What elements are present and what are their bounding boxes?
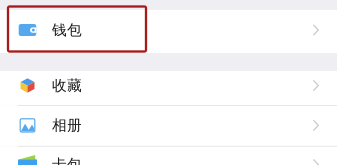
button[interactable]: 收藏	[0, 71, 337, 105]
staticText: 收藏	[52, 76, 82, 94]
staticText: 卡包	[52, 156, 82, 165]
staticText: 钱包	[52, 21, 82, 39]
button[interactable]: 卡包	[0, 147, 337, 165]
button[interactable]: 钱包	[0, 10, 337, 53]
staticText: 相册	[52, 116, 82, 134]
button[interactable]: 相册	[0, 106, 337, 146]
